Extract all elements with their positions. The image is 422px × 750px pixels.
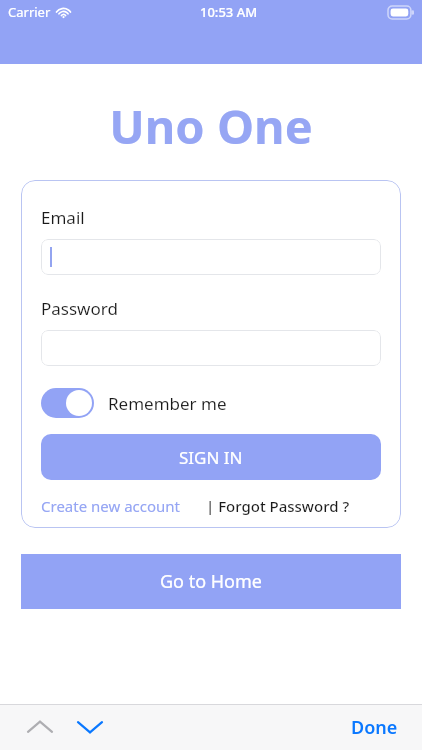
- button[interactable]: Email input: [41, 239, 381, 275]
- button[interactable]: Create new account: [41, 496, 180, 516]
- staticText: Email: [41, 206, 85, 229]
- button[interactable]: Remember me toggle: [41, 386, 227, 420]
- button[interactable]: SIGN IN: [41, 434, 381, 480]
- button[interactable]: Remember me toggle: [41, 388, 94, 418]
- button[interactable]: Previous field: [18, 705, 62, 749]
- button[interactable]: Next field: [68, 705, 112, 749]
- staticText: Password: [41, 297, 118, 320]
- staticText: Done: [351, 715, 398, 740]
- staticText: Carrier: [8, 3, 51, 21]
- button[interactable]: Done: [345, 707, 404, 748]
- staticText: 10:53 AM: [200, 3, 258, 21]
- staticText: Remember me: [108, 392, 227, 415]
- staticText: Uno One: [109, 94, 313, 158]
- staticText: SIGN IN: [179, 446, 243, 469]
- button[interactable]: | Forgot Password ?: [206, 496, 350, 516]
- staticText: Go to Home: [160, 569, 262, 594]
- button[interactable]: Go to Home: [21, 554, 401, 609]
- button[interactable]: Password input: [41, 330, 381, 366]
